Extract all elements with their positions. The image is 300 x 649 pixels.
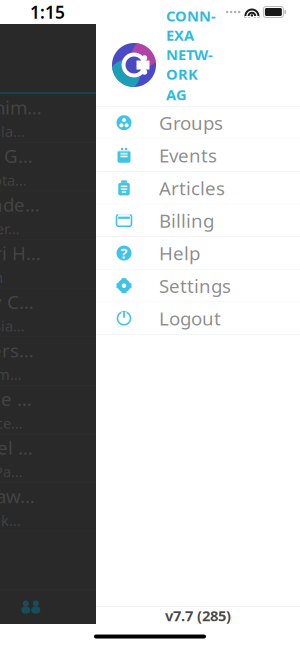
staticText: Erika G… xyxy=(0,143,33,168)
staticText: Tunisia… xyxy=(0,316,25,336)
staticText: France… xyxy=(0,413,23,433)
staticText: Camer… xyxy=(0,219,20,238)
staticText: AG xyxy=(166,85,187,104)
staticText: v7.7 (285) xyxy=(165,606,231,625)
staticText: Billing xyxy=(159,208,214,233)
staticText: Céline … xyxy=(0,386,32,411)
staticText: ? xyxy=(120,243,127,263)
staticText: Groups xyxy=(159,110,223,135)
button[interactable]: Settings xyxy=(96,270,300,302)
button[interactable]: ? xyxy=(96,237,300,270)
staticText: Logout xyxy=(159,306,221,331)
staticText: Onsy C… xyxy=(0,289,34,314)
staticText: Japan xyxy=(0,267,3,287)
staticText: Bogota… xyxy=(0,170,27,190)
staticText: São Pa… xyxy=(0,462,23,481)
staticText: Nuttaw… xyxy=(0,484,35,508)
staticText: Nkonde… xyxy=(0,192,40,217)
staticText: Articles xyxy=(159,175,225,200)
staticText: Colom… xyxy=(0,365,22,384)
button[interactable]: Logout xyxy=(96,302,300,335)
staticText: 0 xyxy=(179,106,187,124)
staticText: Events xyxy=(159,143,217,168)
button[interactable]: Groups xyxy=(96,107,300,139)
staticText: Shiori H… xyxy=(0,241,41,265)
button[interactable]: Events xyxy=(96,139,300,172)
staticText: Anders… xyxy=(0,338,34,363)
button[interactable]: Billing xyxy=(96,204,300,237)
staticText: Shamim… xyxy=(0,95,42,120)
staticText: CONNEXA NETWORK xyxy=(166,6,216,84)
staticText: Bangk… xyxy=(0,510,21,530)
staticText: Bangla… xyxy=(0,122,25,141)
staticText: Daniel … xyxy=(0,435,33,460)
staticText: Help xyxy=(159,241,200,265)
staticText: 1:15 xyxy=(30,0,65,23)
staticText: Settings xyxy=(159,273,231,298)
button[interactable]: Articles xyxy=(96,172,300,204)
